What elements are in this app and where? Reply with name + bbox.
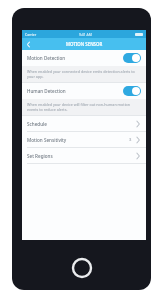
staticText: Carrier [25, 32, 37, 37]
button[interactable]: Human Detection [22, 83, 146, 99]
button[interactable]: Motion Detection [22, 50, 146, 66]
staticText: Set Regions [27, 153, 53, 159]
button[interactable]: Enabled toggle [123, 53, 141, 63]
staticText: MOTION SENSOR [66, 41, 103, 47]
button[interactable]: Enabled toggle [123, 86, 141, 96]
staticText: Motion Detection [27, 55, 66, 61]
button[interactable]: Motion Sensitivity [22, 132, 146, 147]
button[interactable]: Set Regions [22, 148, 146, 163]
staticText: When enabled your connected device emits… [27, 69, 141, 79]
staticText: Human Detection [27, 88, 66, 94]
staticText: Schedule [27, 121, 47, 127]
button[interactable]: Schedule [22, 116, 146, 131]
staticText: When enabled your device will filter out… [27, 102, 141, 112]
staticText: 9:41 AM [79, 32, 92, 37]
button[interactable]: Back [22, 38, 35, 50]
staticText: Motion Sensitivity [27, 137, 67, 143]
button[interactable]: Home [71, 257, 93, 279]
staticText: 3 [129, 137, 132, 143]
